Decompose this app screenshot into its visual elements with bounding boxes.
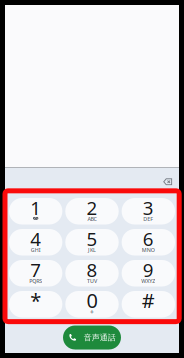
button[interactable]: 4	[9, 229, 62, 255]
button[interactable]: 9	[122, 260, 175, 286]
button[interactable]: 8	[65, 260, 119, 286]
staticText: +	[90, 307, 94, 316]
button[interactable]: 0	[65, 291, 119, 317]
button[interactable]: 7	[9, 260, 62, 286]
staticText: 音声通話	[84, 333, 116, 342]
staticText: PQRS	[29, 277, 42, 284]
button[interactable]: 1	[9, 198, 62, 224]
staticText: ABC	[87, 215, 96, 222]
staticText: 7	[30, 257, 41, 282]
button[interactable]: 5	[65, 229, 119, 255]
button[interactable]: 6	[122, 229, 175, 255]
button[interactable]: 音声通話	[63, 325, 121, 349]
staticText: JKL	[88, 246, 96, 253]
button[interactable]: #	[122, 291, 175, 317]
staticText: 3	[143, 195, 154, 220]
button[interactable]: Delete	[158, 174, 177, 191]
staticText: 1	[30, 195, 41, 220]
staticText: 6	[143, 226, 154, 251]
staticText: DEF	[143, 215, 153, 222]
button[interactable]: 3	[122, 198, 175, 224]
staticText: 8	[86, 257, 97, 282]
staticText: #	[142, 287, 155, 314]
staticText: 9	[143, 257, 154, 282]
staticText: TUV	[87, 277, 97, 284]
button[interactable]: *	[9, 291, 62, 317]
staticText: WXYZ	[141, 277, 155, 284]
staticText: 0	[86, 287, 97, 314]
staticText: 2	[86, 195, 97, 220]
button[interactable]: 2	[65, 198, 119, 224]
staticText: 4	[30, 226, 41, 251]
staticText: 5	[86, 226, 97, 251]
staticText: MNO	[142, 246, 155, 253]
staticText: *	[30, 287, 41, 314]
staticText: GHI	[31, 246, 41, 253]
